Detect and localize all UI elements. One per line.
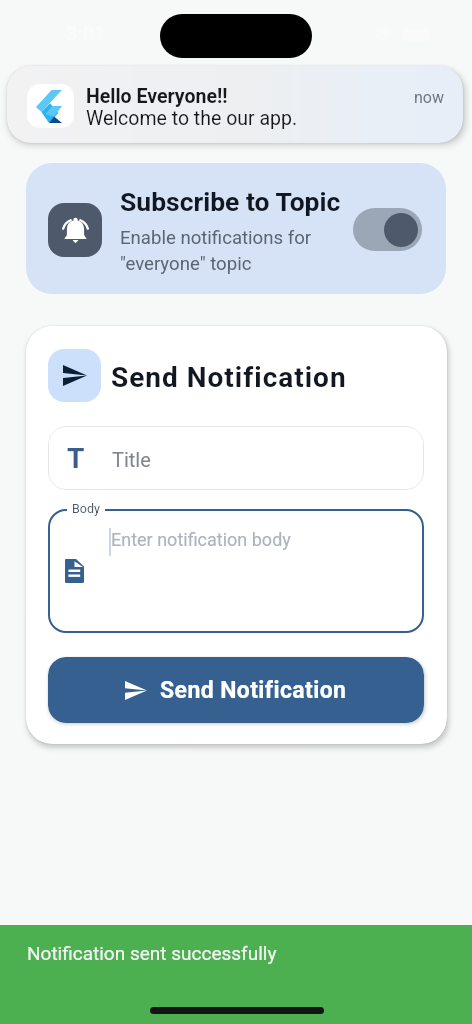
staticText: Subscribe to Topic — [120, 186, 341, 217]
button[interactable]: Subscribe toggle — [353, 208, 422, 251]
staticText: now — [414, 88, 444, 107]
button[interactable] — [48, 509, 424, 633]
staticText: Enable notifications for "everyone" topi… — [120, 227, 312, 275]
staticText: Welcome to the our app. — [86, 107, 298, 130]
staticText: Body — [72, 501, 100, 516]
button[interactable]: Subscribe to Topic — [26, 163, 446, 294]
button[interactable]: Send Notification — [48, 657, 424, 723]
staticText: Send Notification — [111, 361, 347, 394]
staticText: Hello Everyone!! — [86, 85, 228, 108]
staticText: Notification sent successfully — [27, 942, 277, 964]
staticText: Send Notification — [160, 677, 347, 704]
staticText: Title — [112, 448, 151, 471]
staticText: T — [67, 442, 85, 475]
staticText: Enter notification body — [111, 529, 291, 550]
button[interactable]: Hello Everyone!! — [7, 66, 463, 143]
button[interactable]: T — [48, 426, 424, 490]
